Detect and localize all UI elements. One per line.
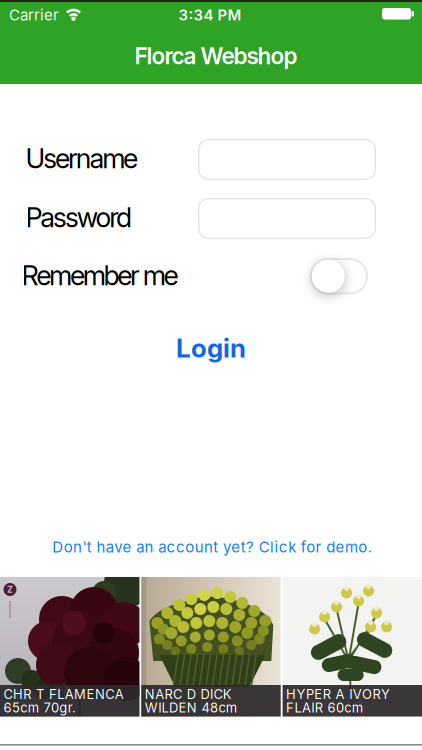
button[interactable]: NARC D DICK (141, 577, 281, 716)
button[interactable]: HYPER A IVORY (283, 577, 422, 716)
staticText: Remember me (21, 259, 178, 292)
button[interactable]: Login (176, 332, 246, 364)
staticText: 65cm 70gr. (3, 700, 76, 716)
staticText: NARC D DICK (145, 686, 232, 702)
staticText: Florca Webshop (134, 42, 297, 70)
staticText: WILDEN 48cm (145, 700, 237, 716)
staticText: FLAIR 60cm (286, 700, 363, 716)
staticText: CHR T FLAMENCA (3, 686, 124, 702)
staticText: Don't have an account yet? Click for dem… (52, 538, 372, 556)
button[interactable]: Don't have an account yet? Click for dem… (52, 538, 372, 556)
staticText: Username (25, 142, 138, 175)
staticText: Login (176, 332, 246, 364)
button[interactable]: Z (0, 577, 139, 716)
staticText: HYPER A IVORY (286, 686, 390, 702)
button[interactable]: Remember me (310, 258, 368, 294)
staticText: Password (25, 201, 132, 234)
staticText: 3:34 PM (178, 6, 241, 24)
staticText: Z (7, 584, 13, 595)
staticText: Carrier (9, 6, 59, 24)
